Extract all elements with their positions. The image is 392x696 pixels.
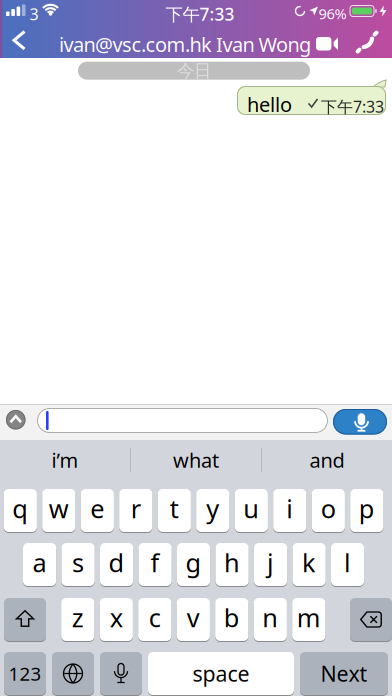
button[interactable]: and [262, 440, 392, 480]
staticText: e [90, 492, 104, 525]
button[interactable]: Video call [310, 31, 344, 56]
button[interactable]: h [215, 542, 249, 586]
button[interactable]: l [331, 542, 364, 586]
staticText: t [170, 492, 179, 525]
staticText: f [151, 546, 160, 579]
staticText: w [49, 492, 69, 525]
button[interactable]: z [61, 597, 94, 641]
staticText: and [309, 447, 344, 473]
button[interactable]: g [177, 542, 210, 586]
button[interactable]: Expand [6, 410, 25, 429]
staticText: u [243, 492, 259, 525]
staticText: i [286, 492, 293, 525]
staticText: x [110, 601, 123, 634]
button[interactable]: j [254, 542, 287, 586]
staticText: q [12, 492, 28, 525]
button[interactable]: Voice call [352, 27, 383, 58]
button[interactable]: Next keyboard [52, 651, 94, 695]
button[interactable]: e [81, 488, 114, 532]
button[interactable]: Dictate [100, 651, 142, 695]
button[interactable]: n [254, 597, 287, 641]
button[interactable]: y [196, 488, 229, 532]
staticText: c [149, 601, 161, 634]
staticText: m [297, 601, 321, 634]
button[interactable]: a [23, 542, 56, 586]
button[interactable]: f [138, 542, 172, 586]
staticText: y [206, 492, 219, 525]
button[interactable]: p [350, 488, 383, 532]
button[interactable]: Next [300, 651, 388, 695]
button[interactable]: i’m [0, 440, 130, 480]
button[interactable]: c [138, 597, 171, 641]
staticText: k [302, 546, 316, 579]
staticText: 123 [8, 661, 41, 686]
staticText: z [72, 601, 84, 634]
staticText: a [33, 546, 47, 579]
staticText: v [187, 601, 200, 634]
staticText: n [262, 601, 278, 634]
staticText: o [321, 492, 336, 525]
button[interactable]: 123 [4, 651, 46, 695]
staticText: p [359, 492, 375, 525]
button[interactable]: Shift [4, 597, 46, 641]
staticText: g [186, 546, 202, 579]
button[interactable]: s [61, 542, 95, 586]
button[interactable]: k [292, 542, 326, 586]
staticText: l [344, 546, 351, 579]
staticText: hello [247, 91, 292, 118]
staticText: 下午7:33 [165, 2, 234, 25]
staticText: 3 [29, 3, 38, 25]
staticText: space [192, 659, 249, 688]
button[interactable]: m [292, 597, 325, 641]
button[interactable]: v [177, 597, 210, 641]
staticText: Next [320, 659, 367, 688]
button[interactable]: what [131, 440, 261, 480]
button[interactable]: x [100, 597, 133, 641]
button[interactable]: r [119, 488, 152, 532]
staticText: 今日 [177, 60, 211, 81]
button[interactable]: o [312, 488, 345, 532]
button[interactable]: b [215, 597, 248, 641]
staticText: s [72, 546, 84, 579]
staticText: ivan@vsc.com.hk Ivan Wong [59, 31, 311, 58]
button[interactable]: Back [6, 25, 32, 55]
staticText: r [131, 492, 141, 525]
staticText: 96% [318, 4, 346, 23]
staticText: 下午7:33 [321, 96, 384, 117]
staticText: i’m [51, 447, 78, 473]
button[interactable]: i [273, 488, 306, 532]
button[interactable]: Voice message [333, 409, 387, 434]
button[interactable]: d [100, 542, 133, 586]
staticText: what [173, 447, 219, 473]
button[interactable]: Delete [350, 597, 392, 641]
button[interactable]: t [158, 488, 191, 532]
staticText: j [267, 546, 274, 579]
button[interactable]: Message field [37, 408, 328, 433]
staticText: h [224, 546, 240, 579]
button[interactable]: u [235, 488, 268, 532]
button[interactable]: q [4, 488, 37, 532]
button[interactable]: space [148, 651, 294, 695]
staticText: b [224, 601, 240, 634]
button[interactable]: w [42, 488, 75, 532]
staticText: d [109, 546, 125, 579]
